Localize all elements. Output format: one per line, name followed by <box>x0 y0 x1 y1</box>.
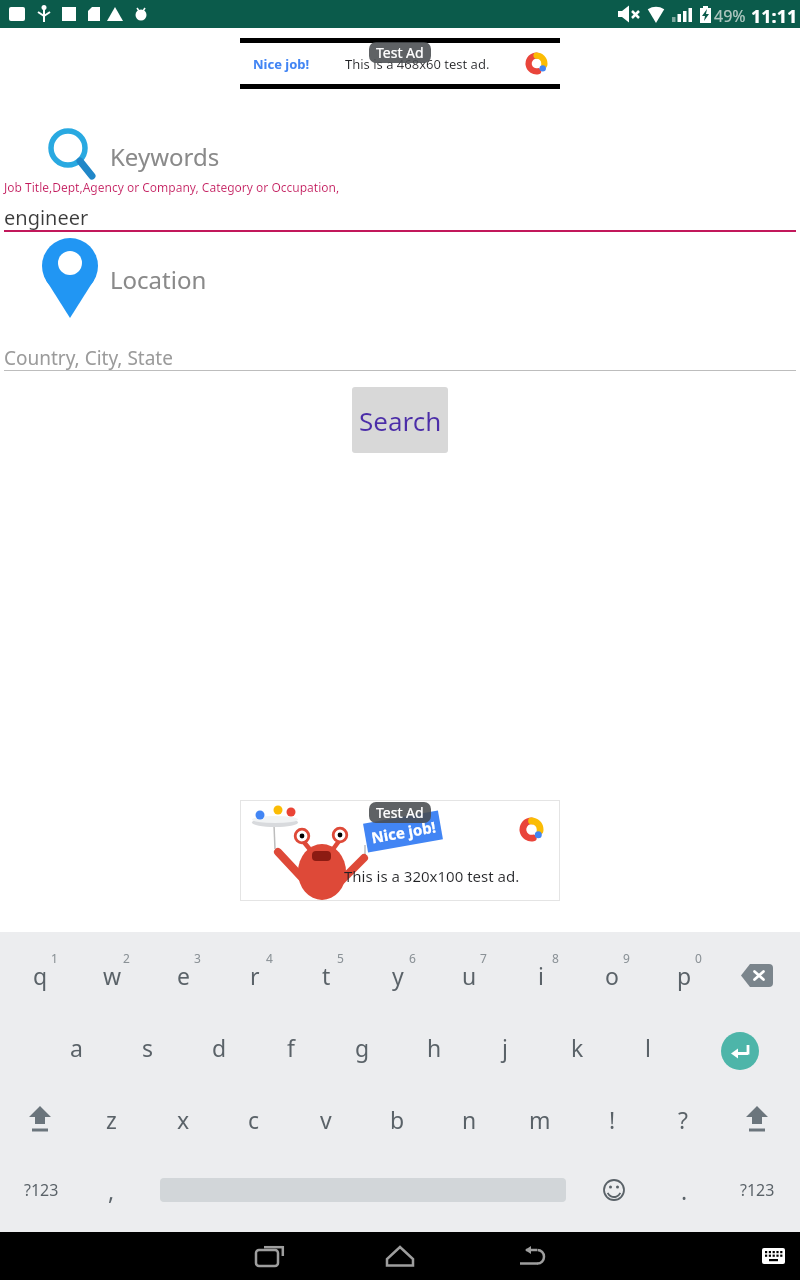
staticText: ?123 <box>24 1179 59 1201</box>
button[interactable]: z <box>85 1093 137 1145</box>
staticText: t <box>322 960 331 991</box>
staticText: g <box>355 1032 370 1063</box>
button[interactable]: Nice job! <box>240 800 560 901</box>
staticText: 8 <box>552 950 559 966</box>
staticText: Location <box>110 263 207 296</box>
staticText: k <box>571 1032 584 1063</box>
button[interactable]: d <box>193 1021 245 1073</box>
button[interactable] <box>721 1032 759 1070</box>
button[interactable]: q <box>14 949 66 1001</box>
button[interactable]: Search <box>352 387 448 453</box>
staticText: 49% <box>714 5 746 27</box>
button[interactable]: e <box>157 949 209 1001</box>
staticText: Search <box>359 403 442 438</box>
button[interactable]: , <box>85 1164 137 1216</box>
button[interactable]: p <box>658 949 710 1001</box>
staticText: z <box>106 1104 117 1135</box>
button[interactable]: r <box>229 949 281 1001</box>
button[interactable]: . <box>658 1164 710 1216</box>
button[interactable] <box>726 949 788 1001</box>
staticText: i <box>538 960 544 991</box>
button[interactable] <box>752 1240 794 1272</box>
staticText: 0 <box>695 950 702 966</box>
button[interactable]: g <box>336 1021 388 1073</box>
staticText: w <box>103 960 122 991</box>
button[interactable]: f <box>265 1021 317 1073</box>
button[interactable]: y <box>372 949 424 1001</box>
staticText: This is a 320x100 test ad. <box>344 866 520 886</box>
button[interactable]: j <box>479 1021 531 1073</box>
button[interactable]: w <box>86 949 138 1001</box>
staticText: , <box>108 1175 115 1206</box>
button[interactable] <box>588 1164 640 1216</box>
staticText: m <box>529 1104 551 1135</box>
button[interactable]: t <box>300 949 352 1001</box>
button[interactable]: u <box>443 949 495 1001</box>
button[interactable]: Nice job! <box>240 38 560 89</box>
staticText: 2 <box>123 950 130 966</box>
staticText: 5 <box>337 950 344 966</box>
staticText: v <box>320 1104 332 1135</box>
button[interactable]: c <box>228 1093 280 1145</box>
staticText: j <box>502 1032 508 1063</box>
staticText: a <box>70 1032 83 1063</box>
staticText: Test Ad <box>376 803 424 822</box>
button[interactable]: ! <box>586 1093 638 1145</box>
staticText: . <box>681 1175 688 1206</box>
button[interactable]: h <box>408 1021 460 1073</box>
staticText: 11:11 <box>751 4 798 29</box>
button[interactable]: o <box>586 949 638 1001</box>
staticText: 7 <box>480 950 487 966</box>
staticText: f <box>287 1032 295 1063</box>
button[interactable]: i <box>515 949 567 1001</box>
staticText: 6 <box>409 950 416 966</box>
staticText: Nice job! <box>370 816 437 847</box>
staticText: Country, City, State <box>4 345 173 371</box>
staticText: 9 <box>623 950 630 966</box>
button[interactable]: s <box>122 1021 174 1073</box>
button[interactable]: ?123 <box>10 1164 72 1216</box>
staticText: c <box>248 1104 260 1135</box>
button[interactable]: engineer <box>0 200 800 230</box>
staticText: This is a 468x60 test ad. <box>345 55 490 73</box>
staticText: q <box>33 960 48 991</box>
staticText: u <box>462 960 477 991</box>
button[interactable] <box>374 1232 426 1280</box>
staticText: Nice job! <box>253 55 310 73</box>
button[interactable]: a <box>50 1021 102 1073</box>
staticText: ? <box>678 1104 688 1135</box>
staticText: y <box>392 960 404 991</box>
staticText: s <box>142 1032 154 1063</box>
button[interactable] <box>244 1232 296 1280</box>
button[interactable] <box>504 1232 556 1280</box>
staticText: 4 <box>266 950 273 966</box>
staticText: o <box>605 960 619 991</box>
staticText: r <box>250 960 260 991</box>
button[interactable]: Country, City, State <box>0 340 800 371</box>
staticText: 3 <box>194 950 201 966</box>
staticText: Test Ad <box>376 43 424 62</box>
staticText: l <box>645 1032 651 1063</box>
button[interactable]: m <box>514 1093 566 1145</box>
button[interactable]: v <box>300 1093 352 1145</box>
button[interactable]: l <box>622 1021 674 1073</box>
staticText: b <box>390 1104 405 1135</box>
staticText: ! <box>609 1104 616 1135</box>
staticText: Keywords <box>110 140 220 173</box>
button[interactable]: k <box>551 1021 603 1073</box>
button[interactable]: b <box>371 1093 423 1145</box>
button[interactable]: n <box>443 1093 495 1145</box>
button[interactable]: ? <box>657 1093 709 1145</box>
button[interactable] <box>14 1093 66 1145</box>
staticText: d <box>212 1032 227 1063</box>
staticText: h <box>427 1032 442 1063</box>
staticText: 1 <box>51 950 58 966</box>
button[interactable]: x <box>157 1093 209 1145</box>
staticText: e <box>177 960 190 991</box>
staticText: Job Title,Dept,Agency or Company, Catego… <box>4 179 340 195</box>
staticText: ?123 <box>740 1179 775 1201</box>
staticText: n <box>462 1104 477 1135</box>
button[interactable]: ?123 <box>726 1164 788 1216</box>
button[interactable] <box>731 1093 783 1145</box>
